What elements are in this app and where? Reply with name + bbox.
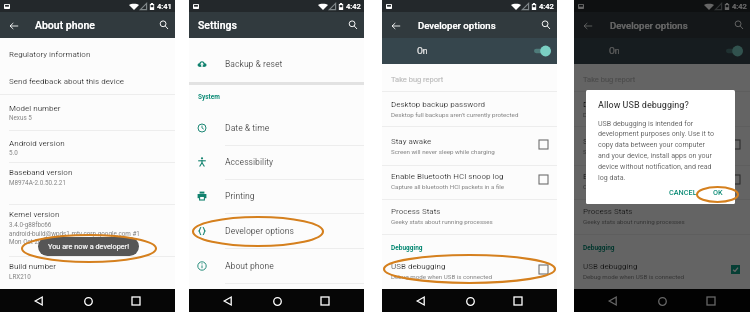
staticText: Regulatory information	[9, 50, 91, 59]
staticText: 3.4.0-g88fbc66	[9, 221, 52, 228]
button[interactable]: Back	[218, 291, 238, 311]
button[interactable]: Navigate up	[5, 17, 22, 34]
staticText: Enable Bluetooth HCI snoop log	[391, 172, 504, 181]
staticText: Enable Bluetooth HCI snoop log	[583, 172, 696, 181]
button[interactable]: OK	[707, 185, 729, 200]
staticText: CANCEL	[669, 188, 697, 197]
staticText: Desktop full backups aren't currently pr…	[391, 111, 519, 118]
staticText: USB debugging	[583, 262, 638, 271]
staticText: Baseband version	[9, 168, 73, 177]
staticText: Developer options	[225, 226, 294, 236]
button[interactable]: Home	[652, 291, 672, 311]
staticText: OK	[713, 188, 723, 197]
staticText: On	[609, 46, 620, 56]
button[interactable]: Accessibility	[189, 145, 364, 179]
staticText: Build number	[9, 262, 57, 271]
button[interactable]	[0, 205, 175, 247]
button[interactable]: Developer options on	[722, 42, 746, 60]
staticText: Capture all bluetooth HCI packets in a f…	[391, 183, 505, 190]
staticText: Android version	[9, 139, 65, 148]
button[interactable]: Backup & reset	[189, 47, 364, 81]
staticText: 4:42	[346, 2, 361, 11]
staticText: Process Stats	[583, 207, 633, 216]
staticText: 5.0	[9, 149, 18, 156]
button[interactable]: Process Stats	[382, 202, 557, 227]
button[interactable]: Home	[78, 291, 98, 311]
button[interactable]	[0, 42, 175, 68]
staticText: Nexus 5	[9, 114, 32, 121]
button[interactable]: Printing	[189, 179, 364, 213]
staticText: On	[417, 46, 428, 56]
staticText: USB debugging is intended for developmen…	[598, 119, 714, 182]
button[interactable]: About phone	[189, 249, 364, 283]
staticText: Take bug report	[583, 75, 636, 84]
button[interactable]: Desktop backup password	[382, 95, 557, 120]
button[interactable]: Desktop backup password	[574, 95, 750, 120]
button[interactable]	[0, 94, 175, 124]
button[interactable]: Date & time	[189, 111, 364, 145]
button[interactable]: Stay awake	[382, 132, 557, 157]
button[interactable]: Recent apps	[315, 291, 335, 311]
button[interactable]: CANCEL	[665, 185, 701, 200]
staticText: Debug mode when USB is connected	[583, 273, 685, 280]
staticText: Accessibility	[225, 157, 274, 167]
staticText: Kernel version	[9, 210, 60, 219]
button[interactable]: Enable Bluetooth HCI snoop log	[382, 167, 557, 192]
button[interactable]	[0, 258, 175, 284]
button[interactable]: Recent apps	[508, 291, 528, 311]
button[interactable]: Search	[345, 17, 361, 33]
button[interactable]: Search	[731, 17, 747, 33]
staticText: Screen will never sleep while charging	[391, 148, 495, 155]
button[interactable]: USB debugging	[574, 257, 750, 282]
staticText: Desktop full backups aren't currently pr…	[583, 111, 711, 118]
button[interactable]: Enable Bluetooth HCI snoop log	[574, 167, 750, 192]
button[interactable]: Back	[29, 291, 49, 311]
button[interactable]	[0, 162, 175, 192]
staticText: M8974A-2.0.50.2.21	[9, 179, 66, 186]
button[interactable]: Back	[603, 291, 623, 311]
staticText: You are now a developer!	[48, 242, 130, 251]
staticText: Geeky stats about running processes	[391, 218, 493, 225]
staticText: About phone	[225, 261, 274, 271]
staticText: Developer options	[418, 20, 496, 31]
button[interactable]: Search	[538, 17, 554, 33]
staticText: USB debugging	[391, 262, 446, 271]
staticText: Desktop backup password	[583, 100, 678, 109]
button[interactable]: Recent apps	[701, 291, 721, 311]
staticText: Mon Oct 20	[9, 238, 42, 245]
button[interactable]	[0, 68, 175, 94]
staticText: Printing	[225, 191, 255, 201]
button[interactable]: Stay awake	[574, 132, 750, 157]
button[interactable]: Developer options	[189, 214, 364, 248]
button[interactable]: Navigate up	[387, 17, 404, 34]
staticText: Stay awake	[391, 137, 432, 146]
button[interactable]: Recent apps	[126, 291, 146, 311]
button[interactable]: Home	[267, 291, 287, 311]
button[interactable]: Back	[411, 291, 431, 311]
button[interactable]	[0, 130, 175, 160]
staticText: Allow USB debugging?	[598, 100, 689, 111]
staticText: 4:42	[539, 2, 554, 11]
button[interactable]: Developer options on	[530, 42, 554, 60]
staticText: Send feedback about this device	[9, 77, 125, 86]
staticText: Model number	[9, 104, 61, 113]
staticText: Debug mode when USB is connected	[391, 273, 493, 280]
button[interactable]: Navigate up	[579, 17, 596, 34]
staticText: Capture all bluetooth HCI packets in a f…	[583, 183, 697, 190]
staticText: 4:41	[157, 2, 172, 11]
staticText: Debugging	[583, 244, 615, 252]
staticText: Developer options	[610, 20, 688, 31]
button[interactable]: Process Stats	[574, 202, 750, 227]
staticText: Screen will never sleep while charging	[583, 148, 687, 155]
staticText: Desktop backup password	[391, 100, 486, 109]
staticText: Process Stats	[391, 207, 441, 216]
staticText: Geeky stats about running processes	[583, 218, 685, 225]
staticText: System	[198, 93, 220, 101]
staticText: LRX210	[9, 273, 31, 280]
staticText: Date & time	[225, 123, 270, 133]
staticText: Backup & reset	[225, 59, 283, 69]
staticText: About phone	[35, 19, 95, 31]
button[interactable]: Search	[156, 17, 172, 33]
button[interactable]: USB debugging	[382, 257, 557, 282]
button[interactable]: Home	[460, 291, 480, 311]
